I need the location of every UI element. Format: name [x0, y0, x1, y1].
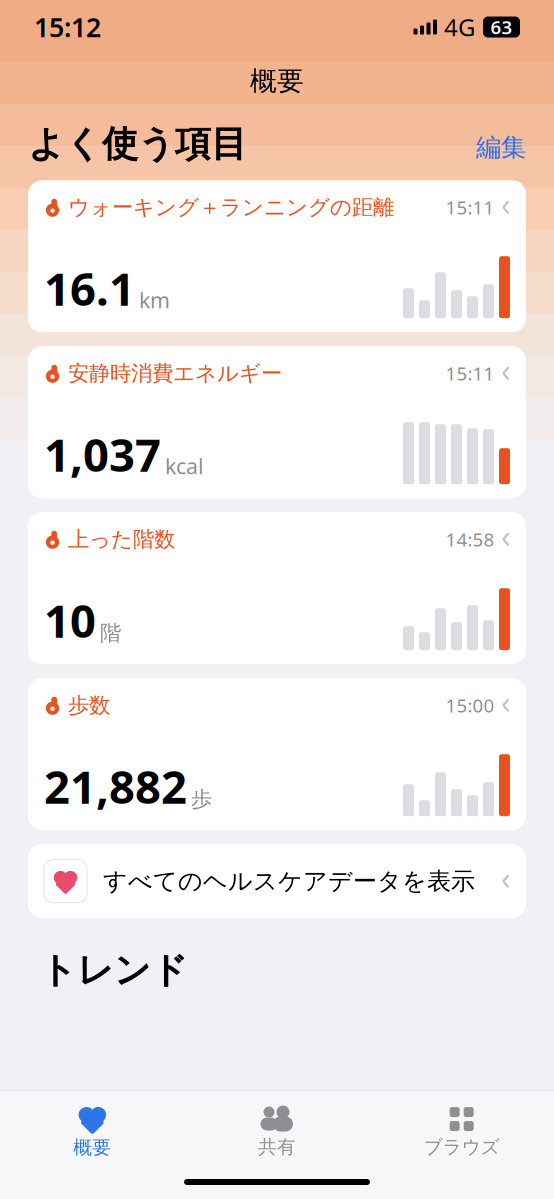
button[interactable]: 上った階数 [28, 512, 526, 664]
staticText: よく使う項目 [28, 122, 247, 166]
staticText: 1,037 [44, 424, 161, 484]
button[interactable]: 安静時消費エネルギー [28, 346, 526, 498]
staticText: ブラウズ [424, 1135, 500, 1158]
button[interactable]: ブラウズ [369, 1097, 554, 1158]
staticText: すべてのヘルスケアデータを表示 [103, 866, 475, 896]
staticText: 歩 [191, 786, 212, 812]
staticText: 15:12 [34, 9, 101, 45]
staticText: 15:11 [446, 361, 495, 386]
button[interactable]: 概要 [0, 1097, 185, 1159]
staticText: 概要 [250, 65, 304, 97]
button[interactable]: 共有 [185, 1097, 369, 1158]
staticText: 編集 [476, 132, 526, 163]
button[interactable]: すべてのヘルスケアデータを表示 [28, 844, 526, 918]
staticText: 15:00 [446, 693, 495, 718]
staticText: km [139, 286, 170, 314]
staticText: 16.1 [44, 258, 135, 318]
staticText: 共有 [258, 1135, 296, 1158]
button[interactable]: 歩数 [28, 678, 526, 830]
staticText: 21,882 [44, 756, 187, 816]
staticText: 4G [444, 11, 475, 43]
staticText: ウォーキング＋ランニングの距離 [68, 194, 394, 220]
staticText: 63 [490, 15, 512, 39]
staticText: 上った階数 [68, 526, 175, 552]
staticText: 10 [44, 590, 96, 650]
button[interactable]: 編集 [476, 132, 526, 163]
staticText: 安静時消費エネルギー [68, 360, 282, 386]
staticText: 14:58 [446, 527, 495, 552]
staticText: 歩数 [68, 692, 110, 718]
button[interactable]: ウォーキング＋ランニングの距離 [28, 180, 526, 332]
staticText: 概要 [73, 1136, 111, 1159]
staticText: トレンド [40, 948, 188, 992]
staticText: 階 [100, 620, 121, 646]
staticText: 15:11 [446, 195, 495, 220]
staticText: kcal [165, 452, 204, 480]
